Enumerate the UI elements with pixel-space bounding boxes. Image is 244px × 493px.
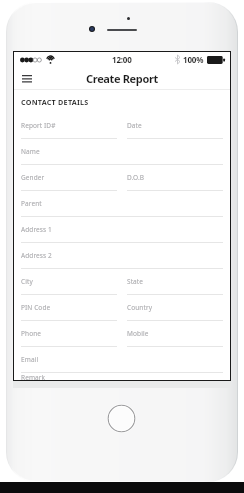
button[interactable]: Report ID# [21, 113, 117, 139]
staticText: D.O.B [127, 173, 145, 182]
staticText: Report ID# [21, 121, 56, 130]
button[interactable]: Address 1 [21, 217, 223, 243]
button[interactable]: Open navigation menu [18, 70, 36, 88]
staticText: CONTACT DETAILS [21, 97, 89, 107]
staticText: Remark [21, 373, 46, 380]
staticText: Country [127, 303, 153, 312]
button[interactable]: Remark [21, 373, 223, 380]
staticText: 12:00 [112, 54, 132, 65]
staticText: State [127, 277, 144, 286]
staticText: Create Report [86, 71, 158, 86]
button[interactable]: Parent [21, 191, 223, 217]
staticText: Gender [21, 173, 45, 182]
button[interactable]: D.O.B [127, 165, 223, 191]
staticText: Date [127, 121, 142, 130]
staticText: PIN Code [21, 303, 51, 312]
button[interactable]: State [127, 269, 223, 295]
button[interactable]: Address 2 [21, 243, 223, 269]
staticText: Phone [21, 329, 42, 338]
button[interactable]: Home [107, 404, 136, 433]
staticText: Address 2 [21, 251, 52, 260]
button[interactable]: Name [21, 139, 223, 165]
button[interactable]: Phone [21, 321, 117, 347]
staticText: Email [21, 355, 39, 364]
button[interactable]: Gender [21, 165, 117, 191]
staticText: Address 1 [21, 225, 52, 234]
button[interactable]: Country [127, 295, 223, 321]
staticText: Mobile [127, 329, 149, 338]
staticText: City [21, 277, 33, 286]
button[interactable]: Email [21, 347, 223, 373]
staticText: Parent [21, 199, 42, 208]
staticText: Name [21, 147, 40, 156]
button[interactable]: PIN Code [21, 295, 117, 321]
button[interactable]: Date [127, 113, 223, 139]
button[interactable]: City [21, 269, 117, 295]
button[interactable]: Mobile [127, 321, 223, 347]
staticText: 100% [183, 54, 204, 65]
